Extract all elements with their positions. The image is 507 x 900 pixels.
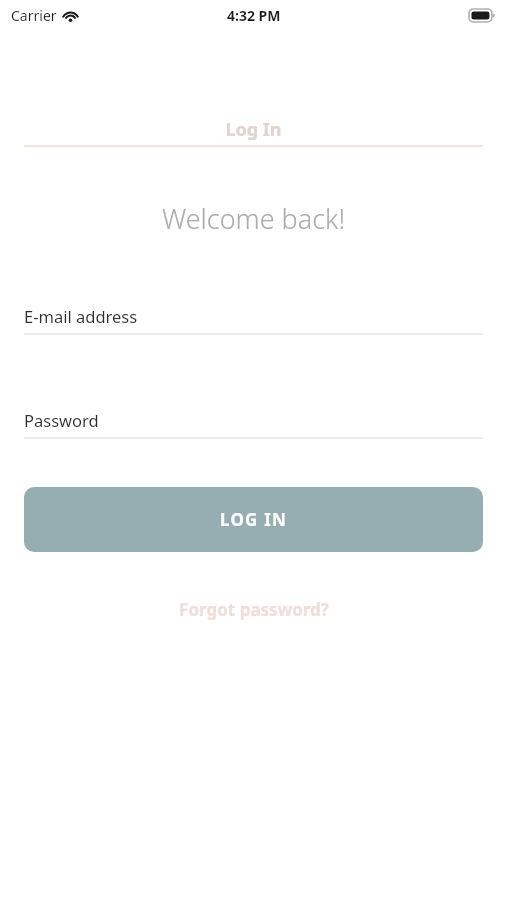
button[interactable]: Password bbox=[24, 407, 483, 433]
staticText: Carrier bbox=[11, 6, 57, 25]
staticText: LOG IN bbox=[220, 508, 287, 531]
staticText: Password bbox=[24, 409, 99, 431]
button[interactable]: LOG IN bbox=[24, 487, 483, 552]
button[interactable]: E-mail address bbox=[24, 303, 483, 329]
staticText: E-mail address bbox=[24, 305, 138, 327]
staticText: 4:32 PM bbox=[227, 6, 281, 25]
staticText: Forgot password? bbox=[179, 598, 329, 621]
staticText: Log In bbox=[0, 117, 507, 142]
staticText: Welcome back! bbox=[0, 200, 507, 237]
button[interactable]: Forgot password? bbox=[167, 593, 341, 626]
